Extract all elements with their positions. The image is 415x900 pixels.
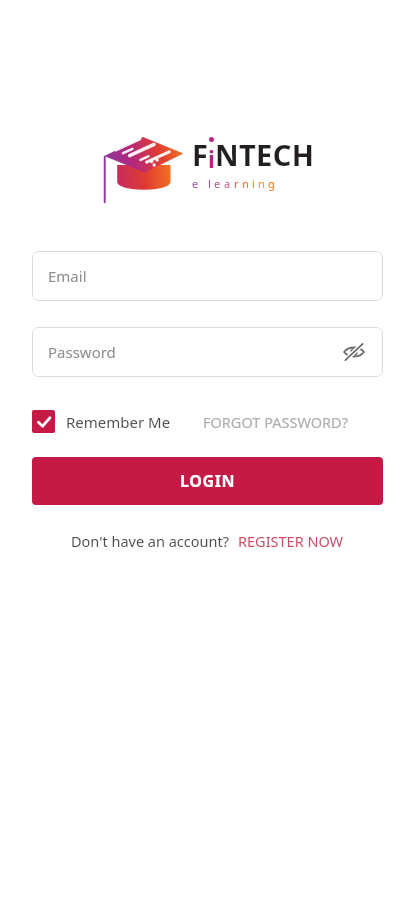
staticText: LOGIN [180, 470, 236, 492]
staticText: NTECH [215, 135, 315, 174]
staticText: i [252, 176, 255, 191]
staticText: Email [48, 266, 369, 286]
button[interactable]: LOGIN [32, 457, 383, 505]
staticText: e [192, 176, 199, 191]
button[interactable]: Password [32, 327, 383, 377]
staticText: F [192, 135, 208, 174]
staticText: FORGOT PASSWORD? [203, 412, 348, 432]
staticText: Don't have an account? [71, 531, 229, 551]
staticText: e [214, 176, 221, 191]
staticText: REGISTER NOW [238, 531, 344, 551]
button[interactable]: FORGOT PASSWORD? [203, 412, 348, 432]
staticText: i [208, 143, 215, 174]
staticText: n [242, 176, 249, 191]
button[interactable]: REGISTER NOW [238, 531, 344, 551]
staticText: g [268, 176, 275, 191]
staticText: Password [48, 342, 339, 362]
button[interactable]: Remember Me [32, 410, 171, 433]
staticText: n [258, 176, 265, 191]
staticText: a [224, 176, 231, 191]
staticText: r [234, 176, 239, 191]
staticText: l [208, 176, 211, 191]
staticText: Remember Me [66, 412, 171, 432]
button[interactable]: Email [32, 251, 383, 301]
button[interactable]: Show password [339, 337, 369, 367]
